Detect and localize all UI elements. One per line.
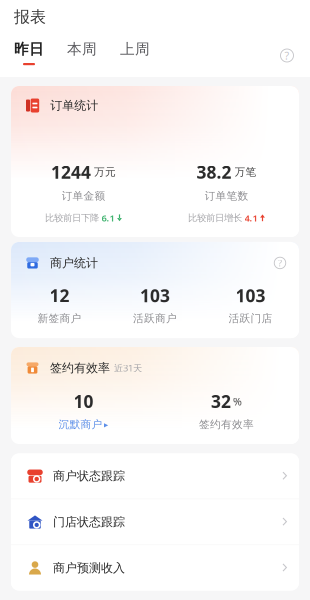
button[interactable]: 上周 (110, 34, 160, 77)
staticText: 商户状态跟踪 (53, 469, 125, 483)
staticText: 门店状态跟踪 (53, 515, 125, 529)
staticText: 订单金额 (61, 189, 105, 203)
button[interactable]: 本周 (54, 34, 110, 77)
staticText: ? (278, 257, 282, 269)
staticText: 103 (140, 284, 170, 307)
staticText: 本周 (67, 40, 97, 58)
staticText: 近31天 (114, 362, 142, 374)
staticText: 昨日 (14, 40, 44, 58)
button[interactable]: 商户预测收入 (11, 545, 299, 590)
button[interactable]: 帮助 (271, 39, 303, 71)
staticText: 活跃商户 (133, 312, 177, 325)
staticText: ▸ (103, 419, 108, 430)
staticText: 商户统计 (50, 256, 98, 270)
staticText: 上周 (120, 40, 150, 58)
staticText: 签约有效率 (50, 361, 110, 375)
staticText: 比较前日增长 (188, 212, 242, 224)
staticText: 万笔 (234, 165, 256, 178)
staticText: 万元 (94, 165, 116, 178)
staticText: 比较前日下降 (45, 212, 99, 224)
staticText: % (233, 394, 242, 408)
staticText: 签约有效率 (199, 418, 254, 431)
button[interactable]: 门店状态跟踪 (11, 499, 299, 545)
button[interactable]: 商户状态跟踪 (11, 453, 299, 499)
staticText: 4.1 (245, 212, 258, 224)
button[interactable]: 沉默商户 (58, 418, 108, 431)
staticText: 6.1 (102, 212, 115, 224)
staticText: 10 (73, 390, 93, 413)
button[interactable]: 帮助 (270, 253, 290, 273)
staticText: 新签商户 (37, 312, 81, 325)
staticText: 12 (49, 284, 69, 307)
staticText: 103 (235, 284, 265, 307)
staticText: 32 (211, 390, 231, 413)
staticText: 活跃门店 (228, 312, 272, 325)
staticText: ? (284, 48, 289, 63)
staticText: 报表 (14, 7, 46, 27)
staticText: 商户预测收入 (53, 560, 125, 575)
button[interactable]: 昨日 (4, 34, 54, 77)
staticText: 沉默商户 (58, 418, 102, 431)
staticText: 订单统计 (50, 98, 98, 113)
staticText: 订单笔数 (204, 189, 248, 203)
staticText: 1244 (51, 160, 91, 183)
staticText: 38.2 (196, 160, 231, 183)
